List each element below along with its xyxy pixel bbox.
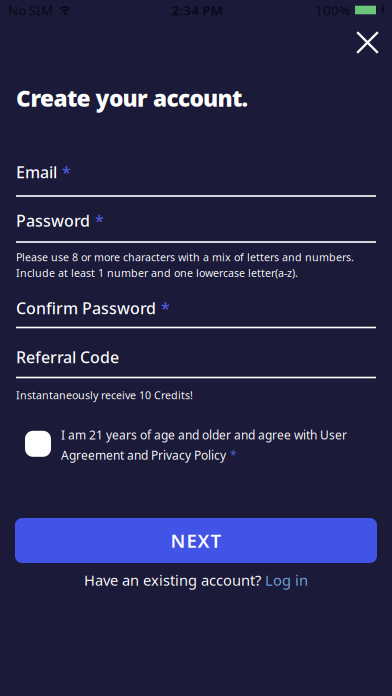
button[interactable]: Log in xyxy=(84,570,308,590)
staticText: Agreement and Privacy Policy xyxy=(61,447,226,463)
button[interactable]: NEXT xyxy=(15,518,377,563)
staticText: * xyxy=(62,161,71,183)
staticText: Include at least 1 number and one lowerc… xyxy=(16,266,298,280)
button[interactable]: Close xyxy=(356,31,379,54)
staticText: No SIM xyxy=(8,1,53,19)
staticText: I am 21 years of age and older and agree… xyxy=(61,427,347,443)
staticText: Confirm Password xyxy=(16,297,156,319)
staticText: 2:34 PM xyxy=(171,1,222,19)
staticText: Please use 8 or more characters with a m… xyxy=(16,250,354,264)
button[interactable]: I am 21 years of age and older and agree… xyxy=(0,428,392,460)
staticText: Create your account. xyxy=(16,83,248,113)
staticText: * xyxy=(230,447,237,463)
staticText: Referral Code xyxy=(16,346,119,368)
staticText: NEXT xyxy=(170,528,221,553)
staticText: 100% xyxy=(315,1,350,19)
staticText: Email xyxy=(16,161,57,183)
staticText: * xyxy=(95,210,104,231)
staticText: Log in xyxy=(265,570,308,590)
staticText: * xyxy=(161,297,170,319)
staticText: Password xyxy=(16,210,90,231)
staticText: Have an existing account? xyxy=(84,570,261,590)
staticText: Instantaneously receive 10 Credits! xyxy=(16,388,193,402)
